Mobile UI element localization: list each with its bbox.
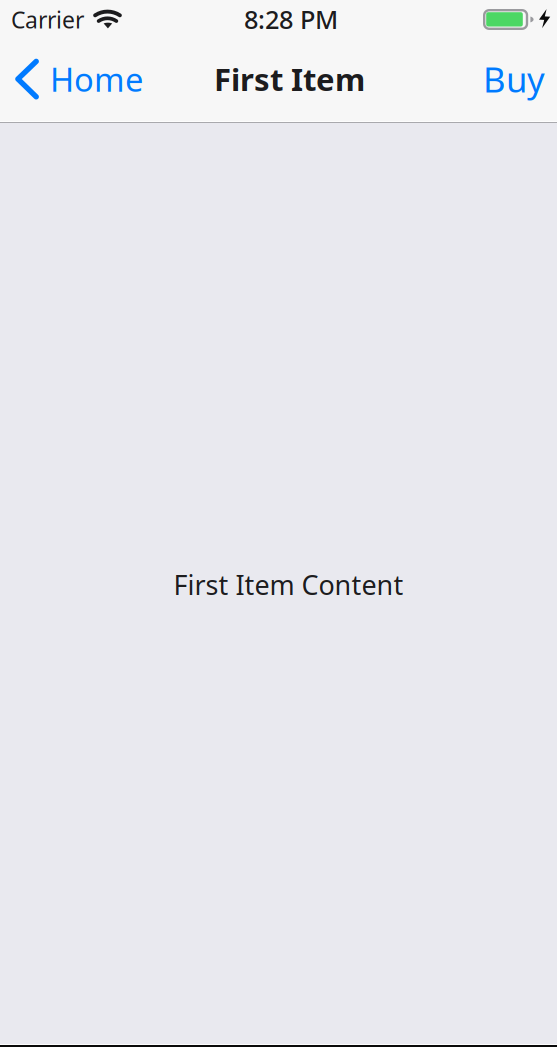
staticText: Buy [483,55,545,103]
staticText: First Item Content [173,566,403,603]
staticText: Carrier [11,4,84,35]
staticText: 8:28 PM [244,2,338,36]
staticText: First Item [214,58,365,100]
staticText: Home [50,57,143,101]
button[interactable]: Buy [461,37,557,121]
button[interactable]: Back to Home [0,37,155,121]
